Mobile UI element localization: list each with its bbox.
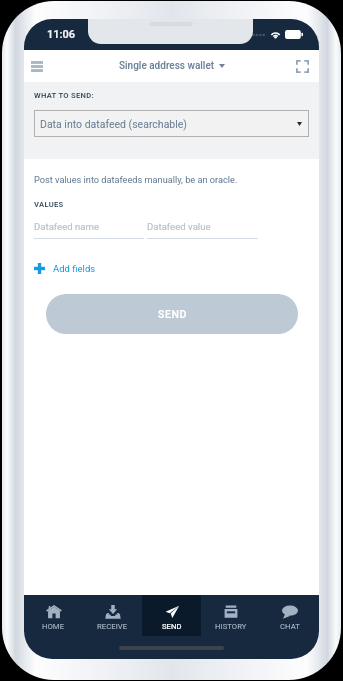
staticText: Datafeed value bbox=[147, 221, 211, 232]
button[interactable]: Datafeed value bbox=[147, 221, 258, 239]
button[interactable]: RECEIVE bbox=[83, 595, 142, 636]
staticText: VALUES bbox=[34, 200, 64, 209]
staticText: CHAT bbox=[280, 622, 300, 631]
button[interactable]: HISTORY bbox=[201, 595, 260, 636]
button[interactable]: SEND bbox=[142, 595, 201, 636]
staticText: HISTORY bbox=[215, 622, 247, 631]
staticText: Data into datafeed (searchable) bbox=[40, 118, 188, 130]
staticText: Datafeed name bbox=[34, 221, 100, 232]
button[interactable]: Data into datafeed (searchable) bbox=[34, 110, 309, 137]
staticText: Single address wallet bbox=[119, 60, 215, 72]
staticText: RECEIVE bbox=[97, 622, 128, 631]
button[interactable]: Add fields bbox=[32, 260, 98, 277]
button[interactable]: HOME bbox=[24, 595, 83, 636]
button[interactable]: Open navigation menu bbox=[25, 54, 49, 78]
button[interactable]: CHAT bbox=[260, 595, 319, 636]
staticText: HOME bbox=[42, 622, 65, 631]
button[interactable]: Scan QR code bbox=[290, 54, 314, 78]
button[interactable]: SEND bbox=[46, 294, 298, 334]
button[interactable]: Single address wallet bbox=[115, 56, 229, 76]
staticText: SEND bbox=[158, 308, 187, 320]
staticText: SEND bbox=[162, 622, 182, 631]
button[interactable]: Datafeed name bbox=[34, 221, 144, 239]
staticText: Add fields bbox=[53, 263, 96, 274]
staticText: 11:06 bbox=[47, 28, 76, 41]
staticText: WHAT TO SEND: bbox=[34, 91, 94, 100]
staticText: Post values into datafeeds manually, be … bbox=[34, 174, 238, 185]
